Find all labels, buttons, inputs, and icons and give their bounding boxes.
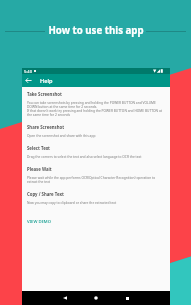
staticText: Please wait while the app performs OCR(O… [27,176,164,184]
staticText: Open the screenshot and share with this … [27,134,96,138]
staticText: Drag the corners to select the text and … [27,155,142,159]
staticText: Now you may copy to clipboard or share t… [27,201,117,205]
staticText: How to use this app [48,24,144,37]
button[interactable]: Home [89,291,103,305]
staticText: Please Wait [27,166,52,172]
staticText: You can take screenshots by pressing and… [27,101,164,117]
staticText: 5:40 [24,69,32,74]
staticText: Share Screenshot [27,124,65,130]
staticText: Take Screenshot [27,91,62,97]
button[interactable]: Recent apps [120,291,134,305]
button[interactable]: Navigate up [22,74,35,87]
staticText: Select Text [27,145,50,151]
staticText: Help [40,77,53,85]
staticText: Copy / Share Text [27,191,64,197]
button[interactable]: VIEW DEMO [27,219,51,225]
staticText: VIEW DEMO [27,219,51,225]
button[interactable]: Back [58,291,72,305]
